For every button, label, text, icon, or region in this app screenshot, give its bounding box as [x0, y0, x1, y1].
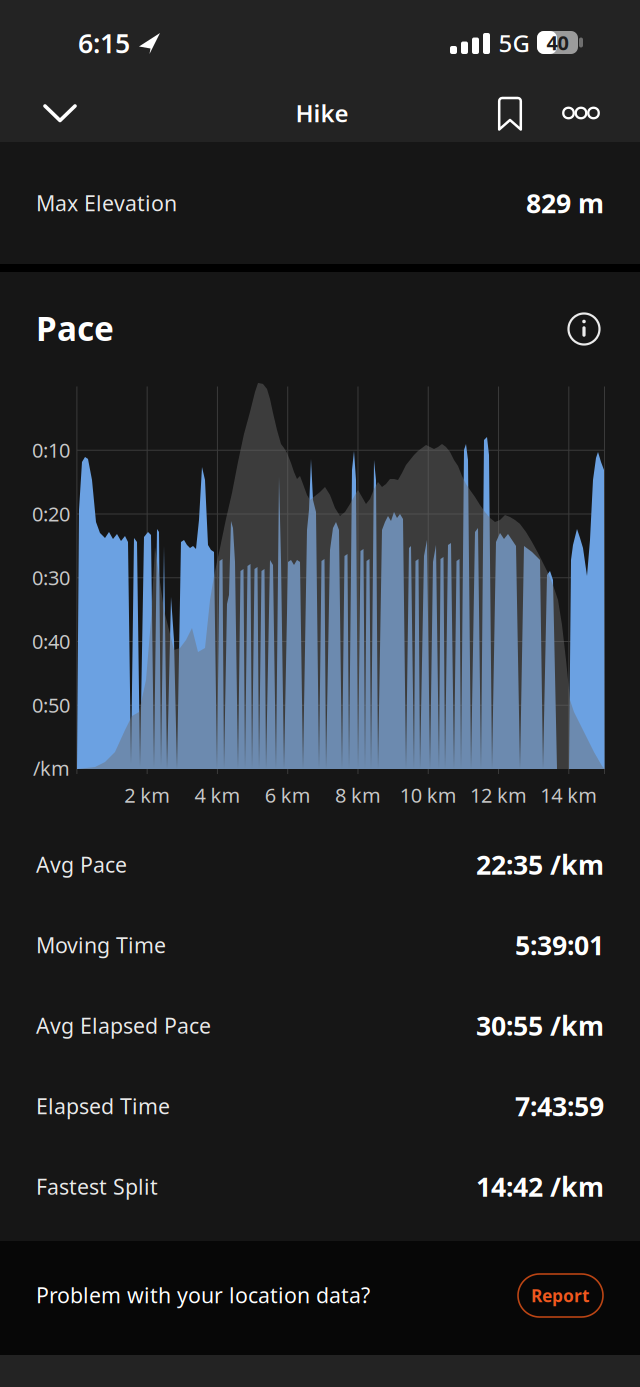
- staticText: 14 km: [540, 782, 597, 808]
- button[interactable]: Collapse: [38, 91, 82, 135]
- staticText: 0:10: [32, 437, 70, 463]
- staticText: 5:39:01: [515, 927, 604, 963]
- staticText: Report: [531, 1284, 590, 1307]
- staticText: 4 km: [194, 782, 240, 808]
- staticText: 0:50: [32, 692, 70, 718]
- button[interactable]: More options: [557, 91, 605, 135]
- staticText: Fastest Split: [36, 1172, 158, 1201]
- staticText: 10 km: [400, 782, 457, 808]
- staticText: 12 km: [470, 782, 527, 808]
- staticText: 6:15: [78, 25, 130, 61]
- staticText: 14:42 /km: [476, 1169, 604, 1204]
- staticText: 0:20: [32, 500, 70, 527]
- button[interactable]: Save: [488, 91, 532, 135]
- staticText: 0:40: [32, 628, 70, 654]
- staticText: Hike: [295, 97, 348, 129]
- staticText: 2 km: [124, 782, 170, 808]
- staticText: 0:30: [32, 564, 70, 591]
- staticText: Moving Time: [36, 931, 166, 959]
- staticText: Pace: [36, 306, 114, 350]
- staticText: Avg Pace: [36, 850, 127, 879]
- staticText: 40: [546, 29, 568, 56]
- staticText: 5G: [498, 27, 529, 59]
- staticText: 8 km: [335, 782, 381, 808]
- staticText: 22:35 /km: [476, 847, 604, 882]
- staticText: Avg Elapsed Pace: [36, 1011, 211, 1040]
- staticText: 7:43:59: [515, 1088, 604, 1124]
- button[interactable]: Information: [560, 305, 608, 353]
- button[interactable]: Report: [518, 1274, 603, 1317]
- staticText: Problem with your location data?: [36, 1281, 370, 1309]
- staticText: 30:55 /km: [476, 1008, 604, 1043]
- staticText: Elapsed Time: [36, 1092, 170, 1120]
- staticText: 829 m: [526, 185, 604, 221]
- staticText: 6 km: [265, 782, 311, 808]
- staticText: Max Elevation: [36, 189, 177, 217]
- staticText: /km: [33, 755, 70, 781]
